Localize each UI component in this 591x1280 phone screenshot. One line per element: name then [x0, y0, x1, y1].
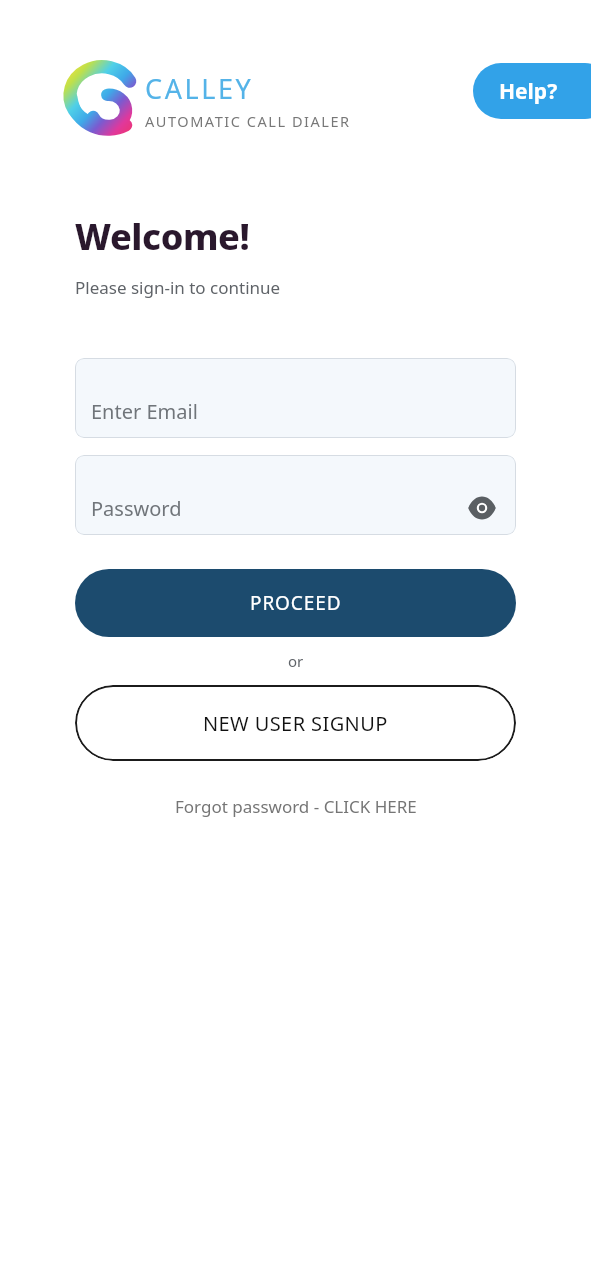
staticText: PROCEED: [250, 590, 342, 616]
button[interactable]: Password: [75, 455, 516, 535]
staticText: Password: [91, 495, 182, 522]
staticText: CALLEY: [145, 70, 254, 107]
staticText: Please sign-in to continue: [75, 276, 281, 299]
button[interactable]: Show password: [462, 488, 502, 528]
staticText: AUTOMATIC CALL DIALER: [145, 111, 351, 131]
staticText: Welcome!: [75, 212, 250, 261]
staticText: Enter Email: [91, 398, 198, 425]
button[interactable]: Forgot password - CLICK HERE: [75, 795, 516, 818]
button[interactable]: PROCEED: [75, 569, 516, 637]
staticText: or: [288, 651, 304, 671]
button[interactable]: Enter Email: [75, 358, 516, 438]
staticText: Help?: [499, 77, 558, 106]
button[interactable]: Help?: [473, 63, 591, 119]
staticText: NEW USER SIGNUP: [203, 710, 388, 737]
button[interactable]: NEW USER SIGNUP: [75, 685, 516, 761]
staticText: Forgot password - CLICK HERE: [175, 795, 417, 818]
